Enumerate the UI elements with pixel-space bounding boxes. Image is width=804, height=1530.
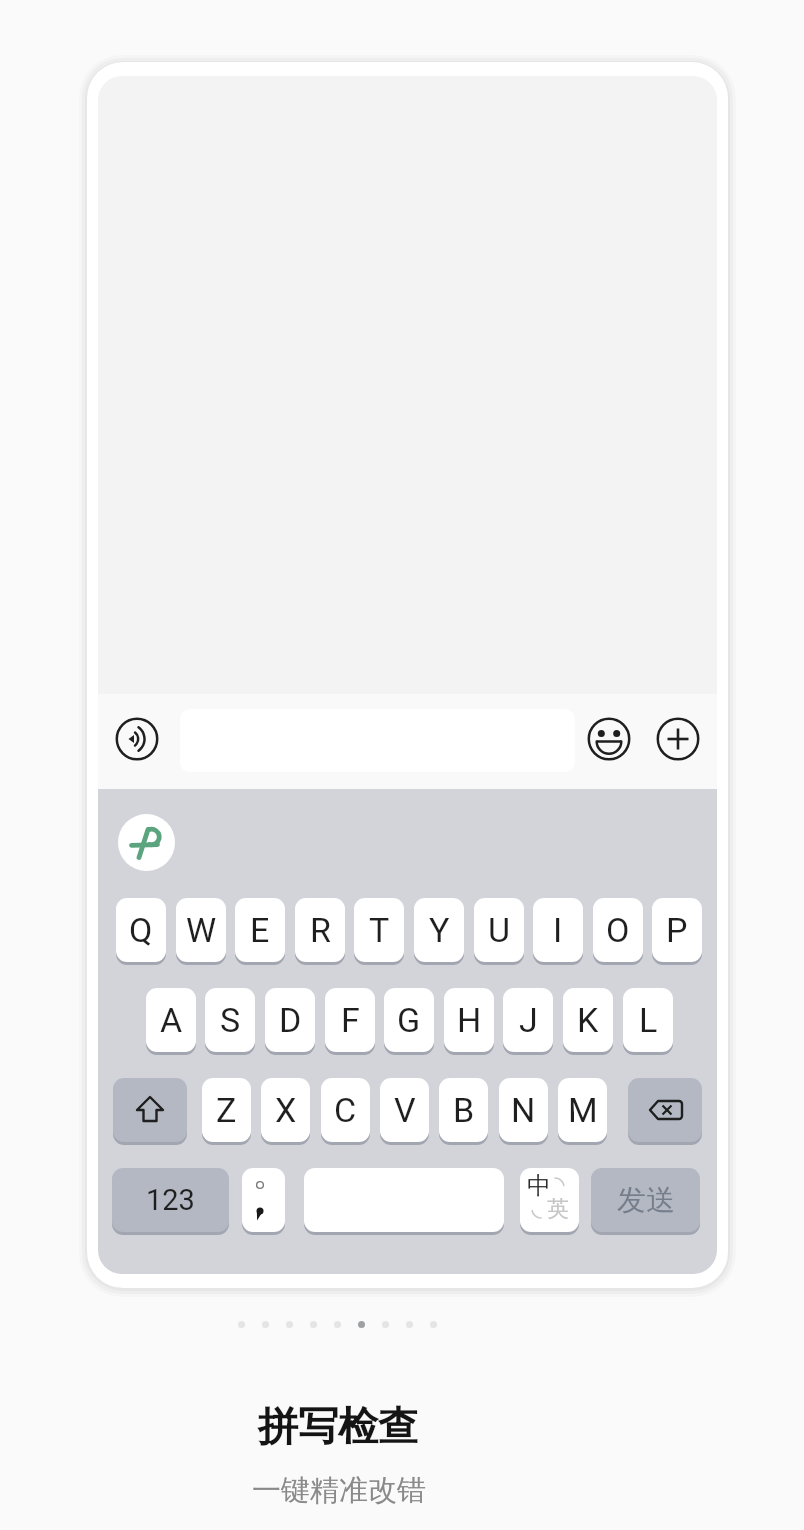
button[interactable]: R bbox=[295, 898, 345, 962]
button[interactable]: F bbox=[325, 988, 375, 1052]
staticText: I bbox=[553, 910, 563, 950]
button[interactable]: K bbox=[563, 988, 613, 1052]
button[interactable]: J bbox=[503, 988, 553, 1052]
button[interactable]: A bbox=[146, 988, 196, 1052]
button[interactable]: U bbox=[474, 898, 524, 962]
staticText: 一键精准改错 bbox=[252, 1472, 426, 1509]
button[interactable] bbox=[113, 1078, 187, 1142]
staticText: R bbox=[310, 910, 331, 950]
button[interactable]: Q bbox=[116, 898, 166, 962]
button[interactable]: I bbox=[533, 898, 583, 962]
staticText: B bbox=[453, 1090, 475, 1130]
staticText: P bbox=[666, 910, 688, 950]
staticText: C bbox=[334, 1090, 357, 1130]
button[interactable] bbox=[656, 717, 700, 761]
button[interactable]: 123 bbox=[112, 1168, 229, 1232]
button[interactable]: C bbox=[321, 1078, 370, 1142]
button[interactable]: T bbox=[354, 898, 404, 962]
staticText: S bbox=[220, 1000, 241, 1040]
staticText: J bbox=[519, 1000, 538, 1040]
staticText: K bbox=[577, 1000, 599, 1040]
button[interactable] bbox=[587, 717, 631, 761]
button[interactable] bbox=[304, 1168, 504, 1232]
staticText: N bbox=[511, 1090, 536, 1130]
staticText: A bbox=[160, 1000, 183, 1040]
staticText: W bbox=[186, 910, 217, 950]
staticText: Z bbox=[216, 1090, 237, 1130]
button[interactable]: E bbox=[235, 898, 285, 962]
staticText: Y bbox=[429, 910, 450, 950]
button[interactable]: D bbox=[265, 988, 315, 1052]
staticText: X bbox=[275, 1090, 297, 1130]
staticText: L bbox=[639, 1000, 658, 1040]
staticText: 英 bbox=[547, 1195, 569, 1223]
staticText: H bbox=[457, 1000, 482, 1040]
button[interactable]: Z bbox=[202, 1078, 251, 1142]
button[interactable]: X bbox=[261, 1078, 310, 1142]
staticText: G bbox=[397, 1000, 421, 1040]
staticText: O bbox=[606, 910, 630, 950]
staticText: V bbox=[394, 1090, 416, 1130]
staticText: F bbox=[341, 1000, 360, 1040]
button[interactable]: V bbox=[380, 1078, 429, 1142]
button[interactable]: 中 bbox=[520, 1168, 579, 1232]
staticText: E bbox=[250, 910, 270, 950]
button[interactable]: N bbox=[499, 1078, 548, 1142]
staticText: 发送 bbox=[617, 1182, 675, 1219]
button[interactable]: S bbox=[205, 988, 255, 1052]
staticText: 123 bbox=[146, 1183, 195, 1217]
button[interactable]: M bbox=[558, 1078, 607, 1142]
staticText: 中 bbox=[527, 1171, 551, 1201]
button[interactable] bbox=[118, 814, 175, 871]
button[interactable]: O bbox=[593, 898, 643, 962]
button[interactable] bbox=[628, 1078, 702, 1142]
button[interactable]: Y bbox=[414, 898, 464, 962]
button[interactable]: B bbox=[439, 1078, 488, 1142]
staticText: T bbox=[369, 910, 390, 950]
staticText: D bbox=[279, 1000, 302, 1040]
button[interactable] bbox=[242, 1168, 285, 1232]
button[interactable]: L bbox=[623, 988, 673, 1052]
button[interactable]: H bbox=[444, 988, 494, 1052]
staticText: M bbox=[568, 1090, 598, 1130]
button[interactable]: W bbox=[176, 898, 226, 962]
staticText: 拼写检查 bbox=[258, 1401, 418, 1451]
staticText: Q bbox=[129, 910, 153, 950]
staticText: U bbox=[488, 910, 511, 950]
button[interactable] bbox=[115, 717, 159, 761]
button[interactable] bbox=[238, 1321, 437, 1328]
button[interactable]: P bbox=[652, 898, 702, 962]
button[interactable]: G bbox=[384, 988, 434, 1052]
button[interactable]: 发送 bbox=[591, 1168, 700, 1232]
